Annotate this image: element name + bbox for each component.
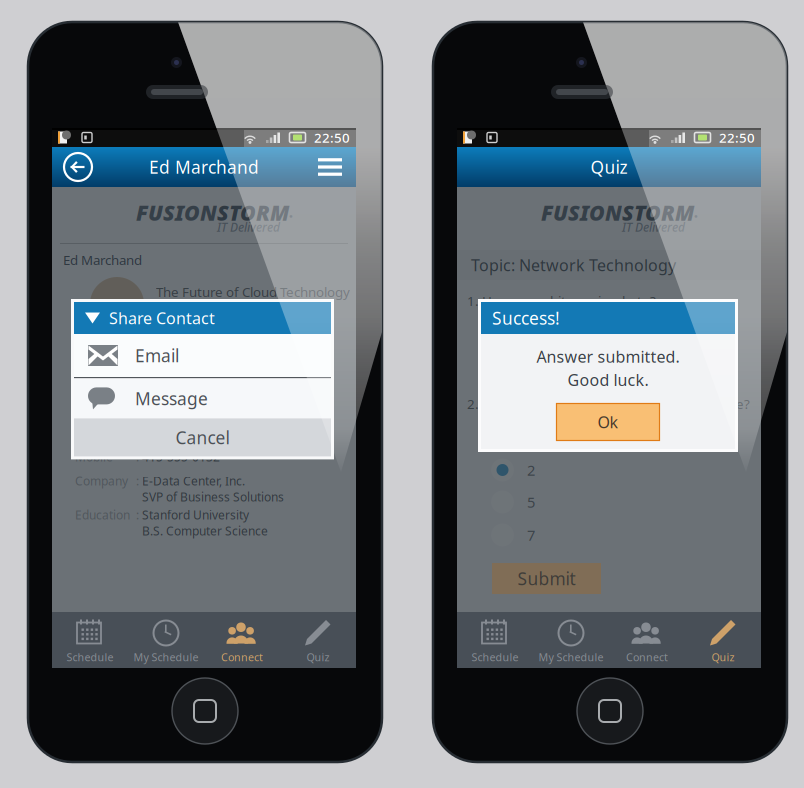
- button[interactable]: Schedule: [457, 612, 533, 668]
- staticText: Connect: [221, 650, 263, 664]
- staticText: 22:50: [719, 128, 755, 147]
- staticText: Quiz: [590, 155, 627, 178]
- staticText: :: [136, 449, 139, 465]
- staticText: IT Delivered: [217, 219, 280, 235]
- staticText: Success!: [492, 306, 560, 329]
- staticText: SVP of Business Solutions: [142, 489, 284, 505]
- staticText: Ed Marchand: [149, 155, 259, 178]
- button[interactable]: Message: [74, 378, 331, 418]
- button[interactable]: Submit: [492, 563, 601, 594]
- staticText: 7: [527, 525, 535, 545]
- staticText: 5: [527, 492, 535, 512]
- staticText: E-Data Center, Inc.: [142, 473, 245, 489]
- staticText: .: [694, 203, 698, 222]
- staticText: Good luck.: [567, 369, 648, 390]
- staticText: :: [136, 473, 139, 489]
- button[interactable]: Connect: [609, 612, 685, 668]
- staticText: STORM: [217, 198, 289, 227]
- staticText: Ed Marchand: [63, 251, 142, 269]
- staticText: Topic: Network Technology: [471, 254, 676, 276]
- button[interactable]: Cancel: [74, 418, 331, 456]
- staticText: 2. How many layers does the OSI model ha…: [467, 395, 750, 413]
- staticText: 22:50: [314, 128, 350, 147]
- staticText: :: [136, 507, 139, 523]
- button[interactable]: Quiz: [685, 612, 761, 668]
- staticText: Answer submitted.: [536, 346, 679, 367]
- staticText: FUSION: [541, 198, 622, 227]
- staticText: 1. How many bits are in a byte?: [467, 292, 656, 310]
- staticText: Mobile: [75, 449, 113, 465]
- button[interactable]: Schedule: [52, 612, 128, 668]
- staticText: Submit: [517, 567, 575, 590]
- staticText: FUSION: [136, 198, 217, 227]
- button[interactable]: My Schedule: [533, 612, 609, 668]
- staticText: Cancel: [175, 426, 229, 449]
- button[interactable]: My Schedule: [128, 612, 204, 668]
- staticText: Ok: [597, 411, 618, 433]
- button[interactable]: Connect: [204, 612, 280, 668]
- staticText: My Schedule: [538, 650, 603, 664]
- staticText: Schedule: [66, 650, 113, 664]
- staticText: My Schedule: [133, 650, 198, 664]
- staticText: B.S. Computer Science: [142, 523, 268, 539]
- staticText: Connect: [626, 650, 668, 664]
- staticText: Quiz: [306, 650, 329, 664]
- staticText: 415-555-0132: [142, 449, 220, 465]
- button[interactable]: Email: [74, 334, 331, 377]
- staticText: Education: [75, 507, 130, 523]
- button[interactable]: Back: [55, 147, 101, 187]
- staticText: STORM: [622, 198, 694, 227]
- staticText: IT Delivered: [622, 219, 685, 235]
- staticText: Message: [135, 387, 208, 410]
- staticText: Stanford University: [142, 507, 249, 523]
- button[interactable]: Quiz: [280, 612, 356, 668]
- staticText: Email: [135, 344, 179, 367]
- button[interactable]: Ok: [556, 403, 659, 440]
- staticText: Schedule: [471, 650, 518, 664]
- button[interactable]: Menu: [307, 147, 353, 187]
- staticText: 2: [527, 460, 535, 480]
- staticText: The Future of Cloud Technology: [156, 283, 350, 301]
- staticText: Quiz: [711, 650, 734, 664]
- staticText: Company: [75, 473, 128, 489]
- staticText: .: [289, 203, 293, 222]
- staticText: Share Contact: [109, 307, 215, 329]
- button[interactable]: 2: [457, 457, 761, 483]
